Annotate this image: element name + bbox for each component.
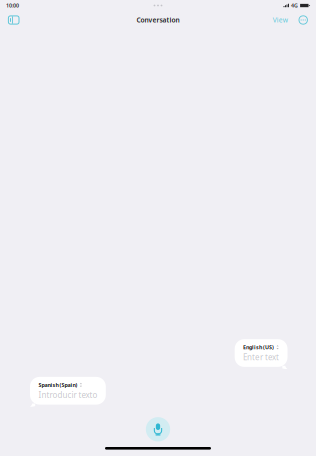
button[interactable]: Show sidebar xyxy=(0,13,23,27)
button[interactable]: Record xyxy=(146,417,170,441)
button[interactable]: View xyxy=(271,13,290,27)
staticText: English (US) xyxy=(243,344,274,351)
staticText: Conversation xyxy=(136,16,179,24)
staticText: Enter text xyxy=(243,352,279,362)
button[interactable]: Spanish (Spain) xyxy=(30,377,106,405)
button[interactable]: English (US) xyxy=(235,339,287,367)
button[interactable]: More options xyxy=(290,13,316,27)
staticText: 4G xyxy=(291,2,298,9)
staticText: Spanish (Spain) xyxy=(38,381,77,388)
staticText: Introducir texto xyxy=(38,389,97,400)
staticText: View xyxy=(273,16,288,24)
staticText: 10:00 xyxy=(6,2,19,9)
